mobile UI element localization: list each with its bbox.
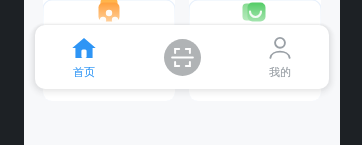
staticText: 我的 (269, 65, 291, 79)
staticText: 首页 (73, 65, 95, 79)
button[interactable] (43, 0, 175, 101)
button[interactable]: 我的 (231, 25, 329, 89)
button[interactable]: 扫一扫 Scan (133, 25, 231, 89)
button[interactable]: 首页 (35, 25, 133, 89)
button[interactable] (189, 0, 321, 101)
